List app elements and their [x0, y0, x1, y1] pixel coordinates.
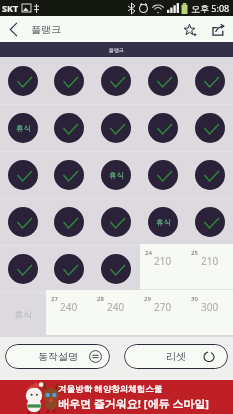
button[interactable]: 동작설명 [5, 344, 110, 369]
staticText: 300 [201, 300, 219, 314]
button[interactable] [195, 254, 225, 284]
button[interactable] [8, 207, 38, 237]
staticText: 210 [154, 254, 172, 268]
staticText: 24 [145, 249, 152, 257]
staticText: 휴식 [16, 124, 31, 133]
button[interactable]: 30 [186, 290, 233, 335]
button[interactable] [148, 66, 178, 96]
button[interactable] [195, 207, 225, 237]
button[interactable] [54, 207, 84, 237]
button[interactable] [195, 66, 225, 96]
staticText: 28 [97, 295, 104, 303]
button[interactable]: 휴식 [8, 113, 38, 143]
button[interactable] [101, 113, 131, 143]
staticText: 겨울방학 해양창의체험스쿨 [58, 383, 163, 395]
staticText: 동작설명 [38, 350, 78, 363]
staticText: 270 [154, 300, 172, 314]
button[interactable] [54, 66, 84, 96]
staticText: 배우면 즐거워요! [에듀 스마일] [58, 396, 209, 411]
button[interactable]: 휴식 [148, 207, 178, 237]
button[interactable]: 리셋 [124, 344, 228, 369]
staticText: 27 [51, 295, 58, 303]
staticText: 30 [191, 295, 198, 303]
button[interactable]: Share [205, 16, 231, 42]
button[interactable] [54, 113, 84, 143]
button[interactable] [54, 160, 84, 190]
staticText: 휴식 [109, 171, 124, 180]
staticText: 플랭크 [31, 23, 61, 36]
button[interactable]: 25 [186, 244, 233, 290]
staticText: 플랭크 [109, 47, 124, 53]
button[interactable] [195, 160, 225, 190]
button[interactable] [101, 207, 131, 237]
button[interactable]: 28 [92, 290, 139, 335]
staticText: 29 [144, 295, 151, 303]
staticText: 오후 5:08 [191, 2, 230, 14]
button[interactable]: Back [0, 16, 26, 42]
staticText: 휴식 [14, 309, 32, 320]
staticText: 240 [60, 300, 78, 314]
staticText: 210 [201, 254, 219, 268]
button[interactable] [101, 66, 131, 96]
staticText: 리셋 [166, 350, 186, 363]
button[interactable] [8, 254, 38, 284]
button[interactable] [195, 113, 225, 143]
button[interactable] [148, 113, 178, 143]
button[interactable]: Add to favourites [177, 16, 205, 42]
button[interactable] [8, 66, 38, 96]
button[interactable] [101, 254, 131, 284]
button[interactable]: 휴식 [101, 160, 131, 190]
button[interactable] [148, 254, 178, 284]
button[interactable]: 27 [46, 290, 92, 335]
staticText: 240 [107, 300, 125, 314]
button[interactable] [8, 160, 38, 190]
button[interactable] [54, 254, 84, 284]
button[interactable]: 겨울방학 해양창의체험스쿨 [0, 380, 233, 414]
staticText: 휴식 [156, 218, 171, 227]
staticText: 25 [191, 249, 198, 257]
button[interactable]: 24 [140, 244, 186, 290]
staticText: SKT [2, 2, 19, 14]
button[interactable] [148, 160, 178, 190]
button[interactable]: 29 [139, 290, 186, 335]
